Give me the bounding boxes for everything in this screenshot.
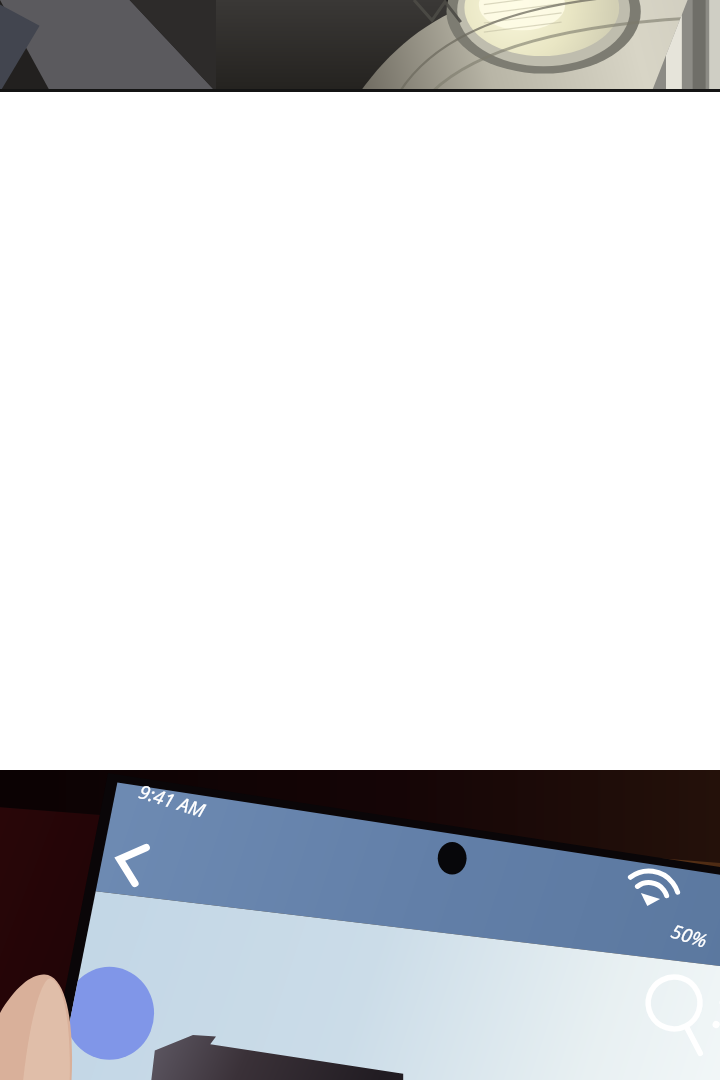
button[interactable]: Search <box>640 970 700 1030</box>
button[interactable]: 9:41 AM <box>136 778 208 824</box>
button[interactable]: Back <box>96 832 152 888</box>
button[interactable]: 50% <box>668 918 711 954</box>
staticText: 50% <box>668 918 711 954</box>
button[interactable]: Profile avatar <box>56 990 144 1078</box>
staticText: 9:41 AM <box>136 778 208 824</box>
